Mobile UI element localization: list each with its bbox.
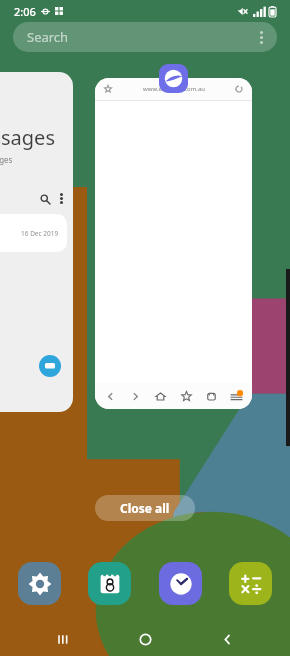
button[interactable]: Clock — [159, 562, 202, 605]
other: Bookmark — [104, 85, 112, 93]
button[interactable]: Home — [155, 391, 166, 402]
button[interactable]: Recents — [46, 622, 82, 656]
staticText: Search — [27, 28, 69, 46]
button[interactable]: Forward — [130, 391, 141, 402]
button[interactable]: Bookmark — [95, 78, 252, 409]
button[interactable]: Calendar — [88, 562, 131, 605]
other: More options — [260, 31, 263, 44]
staticText: No messages — [0, 154, 13, 165]
other: Search — [40, 194, 50, 204]
button[interactable]: Back — [105, 391, 116, 402]
button[interactable]: Back — [209, 622, 245, 656]
button[interactable]: Menu — [231, 391, 242, 402]
other: Internet — [159, 64, 188, 93]
other: More — [60, 193, 63, 204]
button[interactable]: Bookmarks — [181, 391, 192, 402]
staticText: 2:06 — [14, 4, 36, 19]
other: Reload — [235, 85, 243, 93]
staticText: Close all — [120, 500, 170, 516]
staticText: Messages — [0, 124, 55, 151]
button[interactable]: New message — [39, 355, 61, 377]
button[interactable]: Home — [127, 622, 163, 656]
button[interactable]: Tabs — [206, 391, 217, 402]
button[interactable]: Search — [13, 22, 277, 52]
button[interactable]: Close all — [95, 495, 195, 521]
button[interactable]: Calculator — [229, 562, 272, 605]
staticText: 16 Dec 2019 — [21, 229, 59, 238]
button[interactable]: Messages — [0, 72, 73, 412]
staticText: www.example.com.au — [143, 85, 205, 93]
button[interactable]: Settings — [18, 562, 61, 605]
